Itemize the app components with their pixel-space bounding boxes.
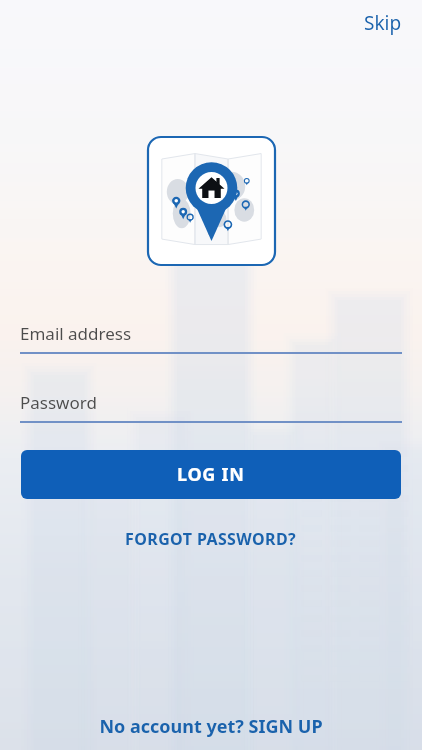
staticText: Password bbox=[20, 391, 97, 414]
button[interactable]: No account yet? SIGN UP bbox=[0, 702, 422, 750]
staticText: Skip bbox=[364, 10, 402, 36]
button[interactable]: Password bbox=[0, 385, 422, 427]
staticText: No account yet? SIGN UP bbox=[99, 714, 323, 739]
button[interactable]: LOG IN bbox=[21, 450, 401, 499]
staticText: LOG IN bbox=[177, 462, 245, 487]
button[interactable]: FORGOT PASSWORD? bbox=[0, 522, 422, 556]
staticText: FORGOT PASSWORD? bbox=[125, 528, 297, 550]
button[interactable]: Skip bbox=[354, 2, 412, 44]
button[interactable]: Email address bbox=[0, 316, 422, 358]
other: App logo bbox=[147, 136, 276, 266]
staticText: Email address bbox=[20, 322, 132, 345]
